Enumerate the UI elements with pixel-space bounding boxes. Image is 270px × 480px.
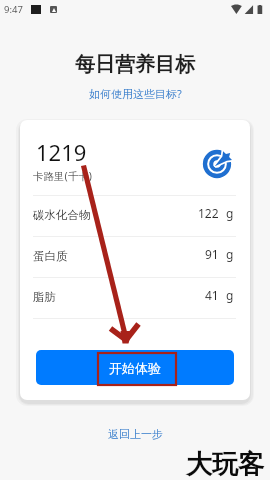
staticText: 卡路里(千卡) xyxy=(33,169,92,183)
button[interactable]: 开始体验 xyxy=(36,350,234,385)
button[interactable]: 脂肪 xyxy=(33,276,234,317)
other: Target goal xyxy=(203,147,234,178)
button[interactable]: 返回上一步 xyxy=(100,424,171,444)
staticText: 1219 xyxy=(36,137,87,167)
staticText: g xyxy=(226,246,234,262)
staticText: 开始体验 xyxy=(109,360,161,376)
staticText: 碳水化合物 xyxy=(33,208,91,222)
staticText: 蛋白质 xyxy=(33,249,68,263)
staticText: 如何使用这些目标? xyxy=(89,86,182,101)
staticText: 脂肪 xyxy=(33,290,56,304)
button[interactable]: 碳水化合物 xyxy=(33,194,234,235)
staticText: 41 xyxy=(205,287,219,303)
staticText: 122 xyxy=(198,205,219,221)
button[interactable]: 如何使用这些目标? xyxy=(81,83,190,104)
button[interactable]: 蛋白质 xyxy=(33,235,234,276)
staticText: 大玩客 xyxy=(186,448,264,480)
button[interactable]: 每日营养目标 xyxy=(0,52,270,77)
staticText: 9:47 xyxy=(4,3,23,16)
staticText: g xyxy=(226,205,234,221)
staticText: 返回上一步 xyxy=(108,427,163,441)
staticText: 91 xyxy=(205,246,219,262)
staticText: 每日营养目标 xyxy=(75,52,195,77)
staticText: g xyxy=(226,287,234,303)
